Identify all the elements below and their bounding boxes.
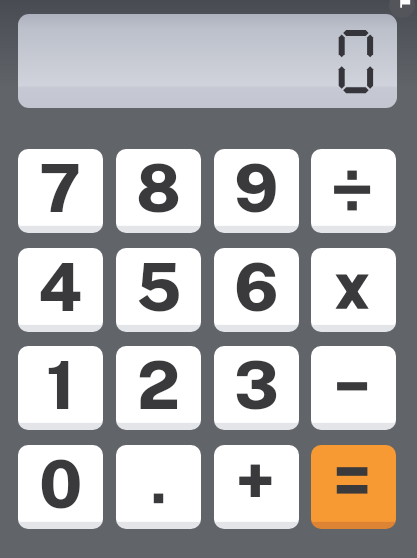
staticText: 4 xyxy=(38,248,83,326)
button[interactable]: 4 xyxy=(18,248,103,332)
button[interactable]: dot xyxy=(116,445,201,529)
button[interactable]: 9 xyxy=(214,149,299,233)
staticText: 0 xyxy=(39,445,83,523)
staticText: 2 xyxy=(137,346,181,424)
button[interactable]: 8 xyxy=(116,149,201,233)
button[interactable] xyxy=(311,248,396,332)
button[interactable]: add xyxy=(214,445,299,529)
button[interactable]: 6 xyxy=(214,248,299,332)
staticText: 5 xyxy=(136,248,182,326)
button[interactable]: 7 xyxy=(18,149,103,233)
button[interactable]: eq xyxy=(311,445,396,529)
button[interactable]: 5 xyxy=(116,248,201,332)
button[interactable]: Display 0 xyxy=(18,14,397,108)
staticText: 3 xyxy=(234,346,279,424)
staticText: 8 xyxy=(136,149,181,227)
staticText: 7 xyxy=(39,149,82,227)
staticText: 6 xyxy=(234,248,279,326)
button[interactable]: 2 xyxy=(116,346,201,430)
staticText: 9 xyxy=(234,149,279,227)
button[interactable]: 3 xyxy=(214,346,299,430)
button[interactable]: 0 xyxy=(18,445,103,529)
staticText: 1 xyxy=(46,346,75,424)
button[interactable]: 1 xyxy=(18,346,103,430)
button[interactable]: div xyxy=(311,149,396,233)
button[interactable]: Report xyxy=(389,0,415,18)
button[interactable]: sub xyxy=(311,346,396,430)
